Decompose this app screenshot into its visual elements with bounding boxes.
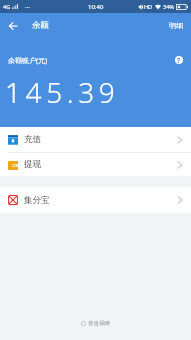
staticText: 余额账户(元) [8, 56, 48, 66]
staticText: 10:40 [88, 3, 104, 11]
button[interactable]: 明细 [161, 16, 191, 35]
button[interactable]: 提现 [0, 153, 191, 176]
staticText: 34% [163, 3, 174, 10]
staticText: 充值 [24, 134, 41, 145]
staticText: 提现 [24, 159, 41, 170]
staticText: 资金保障 [88, 320, 110, 327]
button[interactable]: 集分宝 [0, 187, 191, 213]
staticText: 4G [3, 3, 11, 10]
button[interactable]: 充值 [0, 127, 191, 152]
staticText: 余额 [32, 20, 49, 31]
button[interactable]: Back [3, 16, 23, 36]
staticText: ··· [25, 3, 30, 11]
staticText: HD [144, 3, 153, 10]
staticText: ? [177, 56, 181, 64]
button[interactable]: Help [175, 56, 183, 64]
staticText: 集分宝 [24, 195, 50, 206]
staticText: 145.39 [5, 73, 120, 111]
